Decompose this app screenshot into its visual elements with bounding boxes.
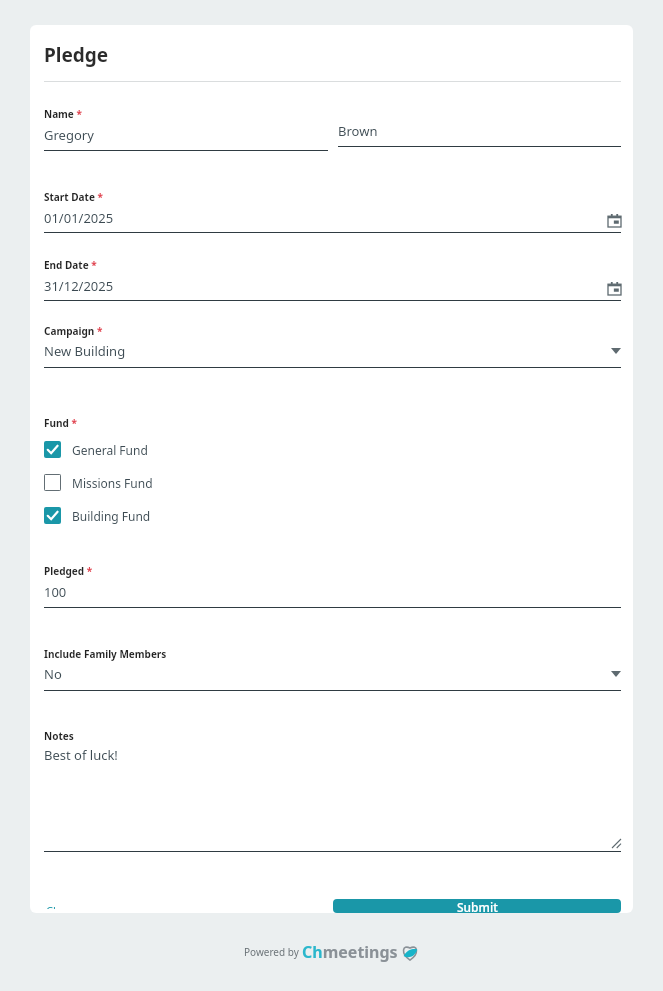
staticText: No [44, 665, 62, 683]
staticText: Gregory [44, 126, 94, 144]
staticText: Name * [44, 107, 82, 121]
staticText: Missions Fund [72, 475, 153, 491]
other: Open campaign list [611, 348, 621, 354]
button[interactable]: Brown [338, 122, 621, 147]
staticText: 31/12/2025 [44, 277, 114, 295]
staticText: New Building [44, 342, 126, 360]
other: Open include family members list [611, 671, 621, 677]
staticText: Include Family Members [44, 647, 167, 661]
staticText: Submit [457, 899, 498, 913]
staticText: Fund * [44, 416, 77, 430]
button[interactable]: 31/12/2025 [44, 277, 621, 301]
staticText: Building Fund [72, 508, 151, 524]
staticText: Brown [338, 122, 378, 140]
staticText: End Date * [44, 258, 97, 272]
button[interactable]: New Building [44, 342, 621, 368]
staticText: 01/01/2025 [44, 209, 114, 227]
staticText: Pledge [44, 42, 109, 68]
staticText: Clear [46, 903, 73, 909]
button[interactable]: Submit [333, 899, 621, 913]
staticText: Campaign * [44, 324, 103, 338]
button[interactable]: Clear [44, 899, 75, 913]
staticText: Powered by [244, 945, 302, 959]
staticText: 100 [44, 583, 67, 601]
button[interactable]: Building Fund [44, 507, 151, 524]
other: Pick start date [608, 214, 621, 227]
button[interactable]: Best of luck! [44, 746, 621, 852]
button[interactable]: 01/01/2025 [44, 209, 621, 233]
staticText: Best of luck! [44, 746, 118, 764]
staticText: Start Date * [44, 190, 103, 204]
other: Pick end date [608, 282, 621, 295]
button[interactable]: General Fund [44, 441, 148, 458]
button[interactable]: 100 [44, 583, 621, 608]
staticText: Chmeetings [302, 941, 398, 963]
staticText: Notes [44, 729, 74, 743]
staticText: General Fund [72, 442, 148, 458]
button[interactable]: Missions Fund [44, 474, 153, 491]
staticText: Pledged * [44, 564, 93, 578]
button[interactable]: Gregory [44, 126, 328, 151]
button[interactable]: No [44, 665, 621, 691]
